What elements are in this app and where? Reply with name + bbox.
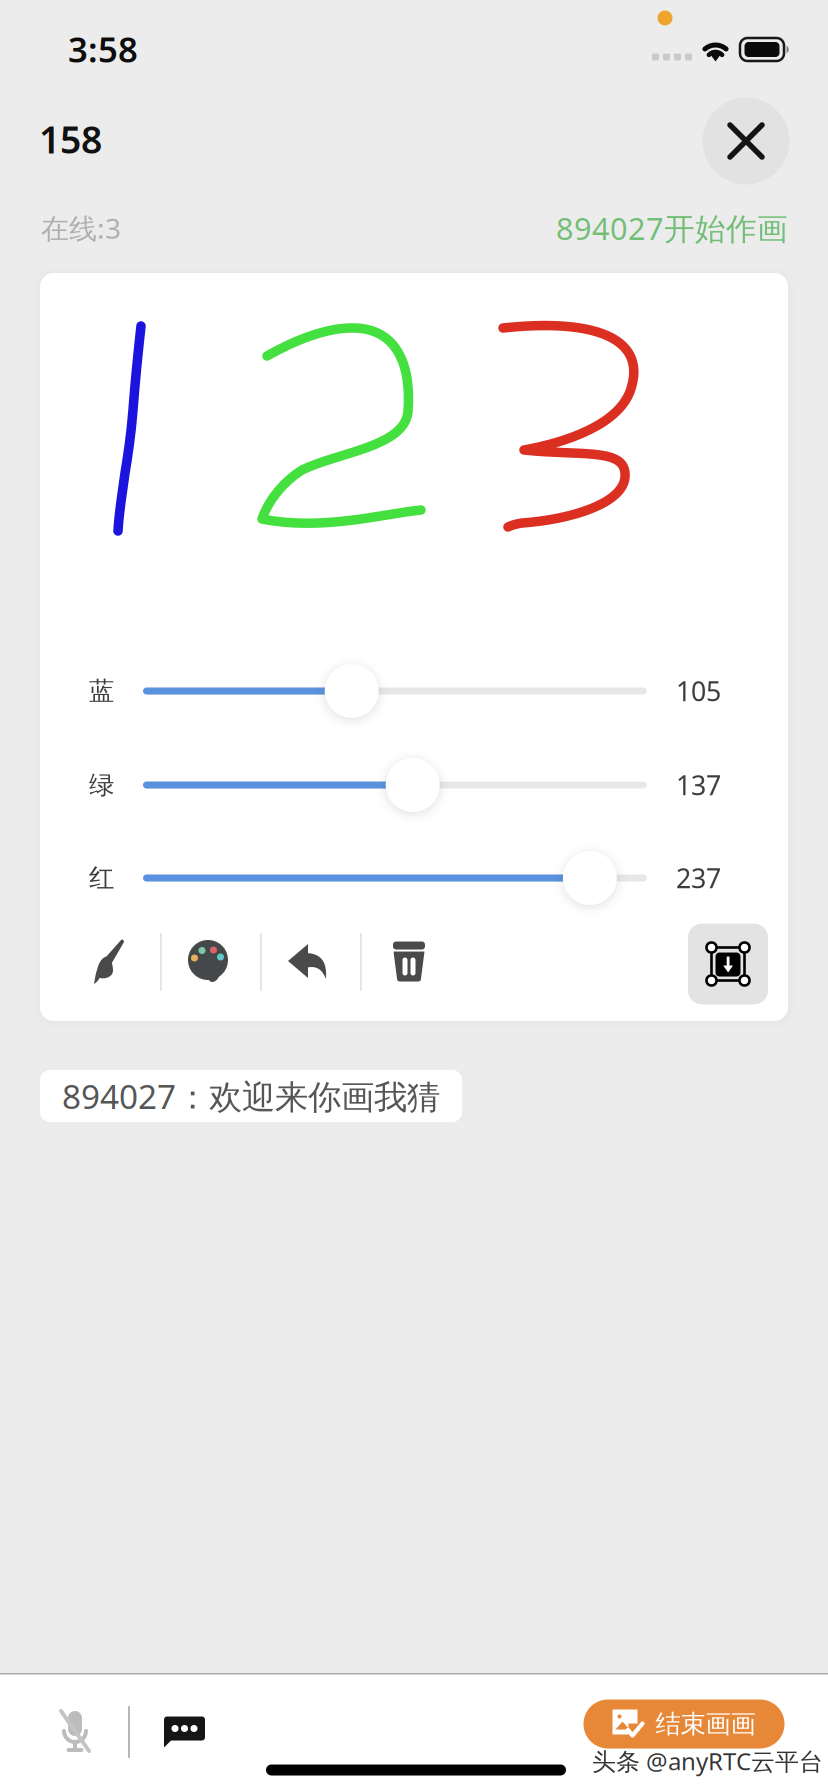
staticText: 105 <box>676 673 721 709</box>
staticText: 894027：欢迎来你画我猜 <box>62 1074 440 1118</box>
staticText: 头条 @anyRTC云平台 <box>592 1745 823 1777</box>
button[interactable]: Clear canvas <box>366 922 452 1002</box>
staticText: 红 <box>89 862 114 893</box>
staticText: 蓝 <box>89 675 114 706</box>
staticText: 绿 <box>89 769 114 800</box>
staticText: 237 <box>676 860 721 896</box>
staticText: 158 <box>39 114 102 164</box>
staticText: 894027开始作画 <box>556 208 788 248</box>
staticText: 3:58 <box>68 26 138 72</box>
button[interactable]: Microphone muted <box>27 1683 123 1779</box>
button[interactable]: Close <box>702 97 789 184</box>
button[interactable]: 结束画画 <box>583 1699 784 1748</box>
button[interactable]: Save drawing <box>688 923 768 1004</box>
button[interactable]: Color palette <box>166 922 252 1002</box>
button[interactable]: Chat <box>137 1684 233 1780</box>
button[interactable]: Brush <box>66 922 152 1002</box>
staticText: 137 <box>676 767 721 803</box>
button[interactable]: Undo <box>265 922 351 1002</box>
staticText: 结束画画 <box>655 1708 755 1739</box>
staticText: 在线:3 <box>41 209 121 247</box>
